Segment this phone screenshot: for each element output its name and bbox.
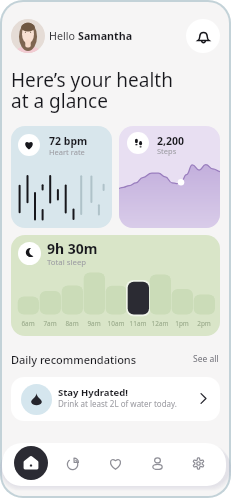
button[interactable]: Profile	[140, 446, 174, 480]
button[interactable]: Statistics	[56, 446, 90, 480]
button[interactable]: Stay Hydrated!	[11, 377, 220, 421]
staticText: 6am	[17, 319, 39, 328]
staticText: Heart rate	[49, 147, 85, 157]
staticText: Steps	[157, 146, 177, 156]
button[interactable]: Profile	[11, 19, 45, 53]
staticText: Daily recommendations	[11, 352, 137, 367]
staticText: Stay Hydrated!	[58, 386, 128, 399]
staticText: 9h 30m	[47, 239, 98, 258]
button[interactable]: 2,200	[119, 126, 220, 228]
staticText: 2pm	[193, 319, 215, 328]
staticText: 10am	[105, 319, 127, 328]
staticText: 7am	[39, 319, 61, 328]
staticText: 9am	[83, 319, 105, 328]
staticText: See all	[193, 353, 219, 365]
button[interactable]: Favorites	[98, 446, 132, 480]
staticText: 8am	[61, 319, 83, 328]
button[interactable]: 9h 30m	[11, 235, 220, 336]
staticText: 72 bpm	[49, 134, 88, 148]
button[interactable]: See all	[191, 351, 221, 367]
button[interactable]: Home	[14, 446, 48, 480]
staticText: 2,200	[157, 134, 185, 148]
button[interactable]: Notifications	[186, 19, 220, 53]
staticText: Samantha	[78, 29, 133, 44]
staticText: 1pm	[171, 319, 193, 328]
staticText: 12am	[149, 319, 171, 328]
staticText: Drink at least 2L of water today.	[58, 398, 177, 409]
staticText: Here’s your health at a glance	[11, 67, 173, 114]
button[interactable]: 72 bpm	[11, 126, 112, 228]
staticText: Total sleep	[47, 257, 87, 268]
button[interactable]: Settings	[181, 446, 215, 480]
staticText: 11am	[127, 319, 149, 328]
staticText: Hello	[49, 29, 78, 44]
